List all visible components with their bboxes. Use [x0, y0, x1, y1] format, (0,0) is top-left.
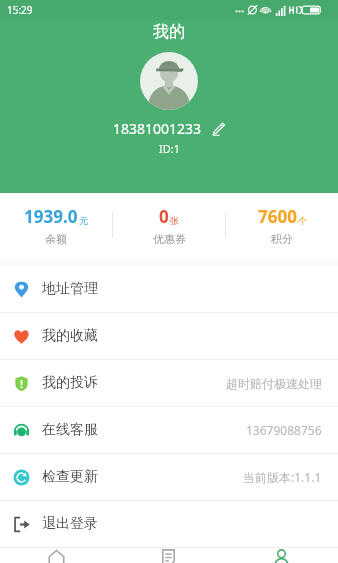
staticText: 优惠券	[153, 232, 186, 246]
button[interactable]: 订单	[112, 548, 225, 563]
button[interactable]: 我的收藏	[0, 313, 338, 359]
button[interactable]: 在线客服	[0, 407, 338, 453]
staticText: 15:29	[7, 3, 33, 17]
staticText: 张	[170, 215, 179, 226]
staticText: ID:1	[159, 141, 180, 156]
staticText: 1939.0	[24, 205, 78, 228]
button[interactable]: 7600	[226, 193, 338, 257]
button[interactable]: Edit nickname	[211, 121, 226, 136]
staticText: 7600	[258, 205, 297, 228]
staticText: 积分	[271, 232, 293, 246]
staticText: ITMOP.COM	[218, 547, 334, 551]
button[interactable]: Avatar	[140, 52, 198, 110]
staticText: 检查更新	[42, 468, 98, 486]
staticText: 13679088756	[246, 422, 322, 438]
button[interactable]: 地址管理	[0, 266, 338, 312]
button[interactable]: 1939.0	[0, 193, 112, 257]
staticText: 个	[298, 215, 307, 226]
staticText: 当前版本:1.1.1	[243, 469, 322, 485]
staticText: 我的收藏	[42, 327, 98, 345]
staticText: 元	[79, 215, 88, 226]
staticText: 在线客服	[42, 421, 98, 439]
staticText: 0	[159, 205, 169, 228]
staticText: 退出登录	[42, 515, 98, 533]
staticText: 我的投诉	[42, 374, 98, 392]
staticText: 我的	[153, 22, 185, 42]
staticText: 余额	[45, 232, 67, 246]
button[interactable]: 0	[113, 193, 225, 257]
staticText: 地址管理	[42, 280, 98, 298]
button[interactable]: 我的	[225, 548, 338, 563]
button[interactable]: 首页	[0, 548, 112, 563]
button[interactable]: 检查更新	[0, 454, 338, 500]
staticText: 18381001233	[113, 119, 202, 138]
staticText: 超时赔付极速处理	[226, 376, 322, 391]
button[interactable]: 我的投诉	[0, 360, 338, 406]
button[interactable]: 退出登录	[0, 501, 338, 547]
